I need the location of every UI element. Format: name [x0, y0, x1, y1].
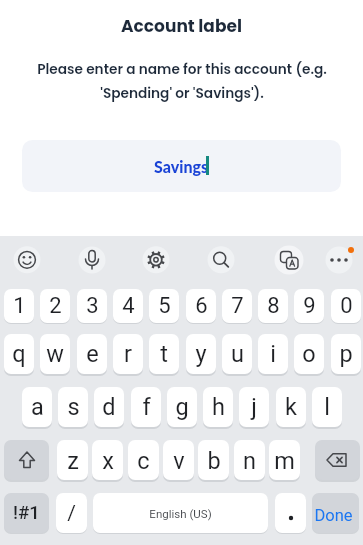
button[interactable]: 8: [258, 289, 288, 323]
staticText: h: [212, 393, 225, 421]
staticText: e: [86, 340, 99, 368]
button[interactable]: /: [56, 493, 87, 533]
button[interactable]: o: [294, 334, 324, 374]
staticText: t: [160, 340, 168, 368]
staticText: c: [137, 447, 150, 475]
button[interactable]: p: [331, 334, 361, 374]
button[interactable]: [7, 239, 47, 279]
button[interactable]: [136, 239, 176, 279]
button[interactable]: f: [131, 387, 161, 427]
staticText: 5: [158, 293, 171, 319]
button[interactable]: n: [234, 440, 265, 480]
staticText: Savings: [154, 157, 209, 176]
staticText: Done: [314, 506, 353, 525]
button[interactable]: i: [258, 334, 288, 374]
staticText: k: [285, 393, 297, 421]
button[interactable]: l: [312, 387, 342, 427]
button[interactable]: v: [163, 440, 194, 480]
staticText: 1: [13, 293, 26, 319]
staticText: u: [231, 340, 244, 368]
button[interactable]: [319, 239, 359, 279]
staticText: l: [324, 393, 330, 421]
staticText: v: [173, 447, 185, 475]
staticText: 0: [340, 293, 353, 319]
staticText: 3: [86, 293, 99, 319]
staticText: d: [102, 393, 116, 421]
button[interactable]: 4: [113, 289, 143, 323]
button[interactable]: j: [239, 387, 269, 427]
button[interactable]: q: [4, 334, 34, 374]
button[interactable]: Done: [312, 493, 359, 533]
button[interactable]: English (US): [93, 493, 268, 533]
staticText: m: [274, 447, 295, 475]
button[interactable]: s: [58, 387, 88, 427]
button[interactable]: b: [198, 440, 229, 480]
button[interactable]: a: [22, 387, 52, 427]
staticText: English (US): [149, 507, 212, 520]
button[interactable]: 0: [331, 289, 361, 323]
staticText: 7: [231, 293, 244, 319]
staticText: 6: [195, 293, 208, 319]
staticText: i: [270, 340, 276, 368]
staticText: w: [46, 340, 64, 368]
staticText: o: [302, 340, 316, 368]
button[interactable]: t: [149, 334, 179, 374]
staticText: f: [142, 393, 151, 421]
staticText: Account label: [121, 14, 242, 38]
button[interactable]: 6: [186, 289, 216, 323]
button[interactable]: [201, 239, 241, 279]
button[interactable]: w: [40, 334, 70, 374]
staticText: s: [67, 393, 80, 421]
staticText: 4: [122, 293, 135, 319]
button[interactable]: [315, 440, 360, 480]
button[interactable]: h: [203, 387, 233, 427]
staticText: !#1: [13, 502, 40, 524]
button[interactable]: 1: [4, 289, 34, 323]
staticText: g: [175, 393, 189, 421]
staticText: p: [339, 340, 353, 368]
button[interactable]: r: [113, 334, 143, 374]
button[interactable]: 9: [294, 289, 324, 323]
button[interactable]: 2: [40, 289, 70, 323]
button[interactable]: [275, 493, 306, 533]
staticText: x: [102, 447, 114, 475]
button[interactable]: e: [77, 334, 107, 374]
staticText: q: [12, 340, 26, 368]
button[interactable]: x: [92, 440, 123, 480]
button[interactable]: g: [167, 387, 197, 427]
button[interactable]: k: [276, 387, 306, 427]
button[interactable]: !#1: [4, 493, 49, 533]
button[interactable]: 3: [77, 289, 107, 323]
button[interactable]: [269, 240, 309, 280]
button[interactable]: [72, 239, 112, 279]
staticText: y: [195, 340, 207, 368]
button[interactable]: m: [269, 440, 300, 480]
staticText: r: [124, 340, 132, 368]
button[interactable]: d: [94, 387, 124, 427]
button[interactable]: Savings: [22, 140, 341, 192]
staticText: a: [31, 393, 44, 421]
staticText: 2: [49, 293, 62, 319]
staticText: Please enter a name for this account (e.…: [37, 60, 327, 103]
staticText: z: [67, 447, 79, 475]
button[interactable]: [4, 440, 49, 480]
button[interactable]: z: [57, 440, 88, 480]
staticText: j: [251, 393, 257, 421]
staticText: /: [67, 501, 76, 526]
button[interactable]: 7: [222, 289, 252, 323]
button[interactable]: y: [186, 334, 216, 374]
staticText: b: [207, 447, 221, 475]
button[interactable]: c: [128, 440, 159, 480]
staticText: 9: [303, 293, 316, 319]
button[interactable]: 5: [149, 289, 179, 323]
staticText: n: [243, 447, 256, 475]
button[interactable]: u: [222, 334, 252, 374]
staticText: 8: [267, 293, 280, 319]
